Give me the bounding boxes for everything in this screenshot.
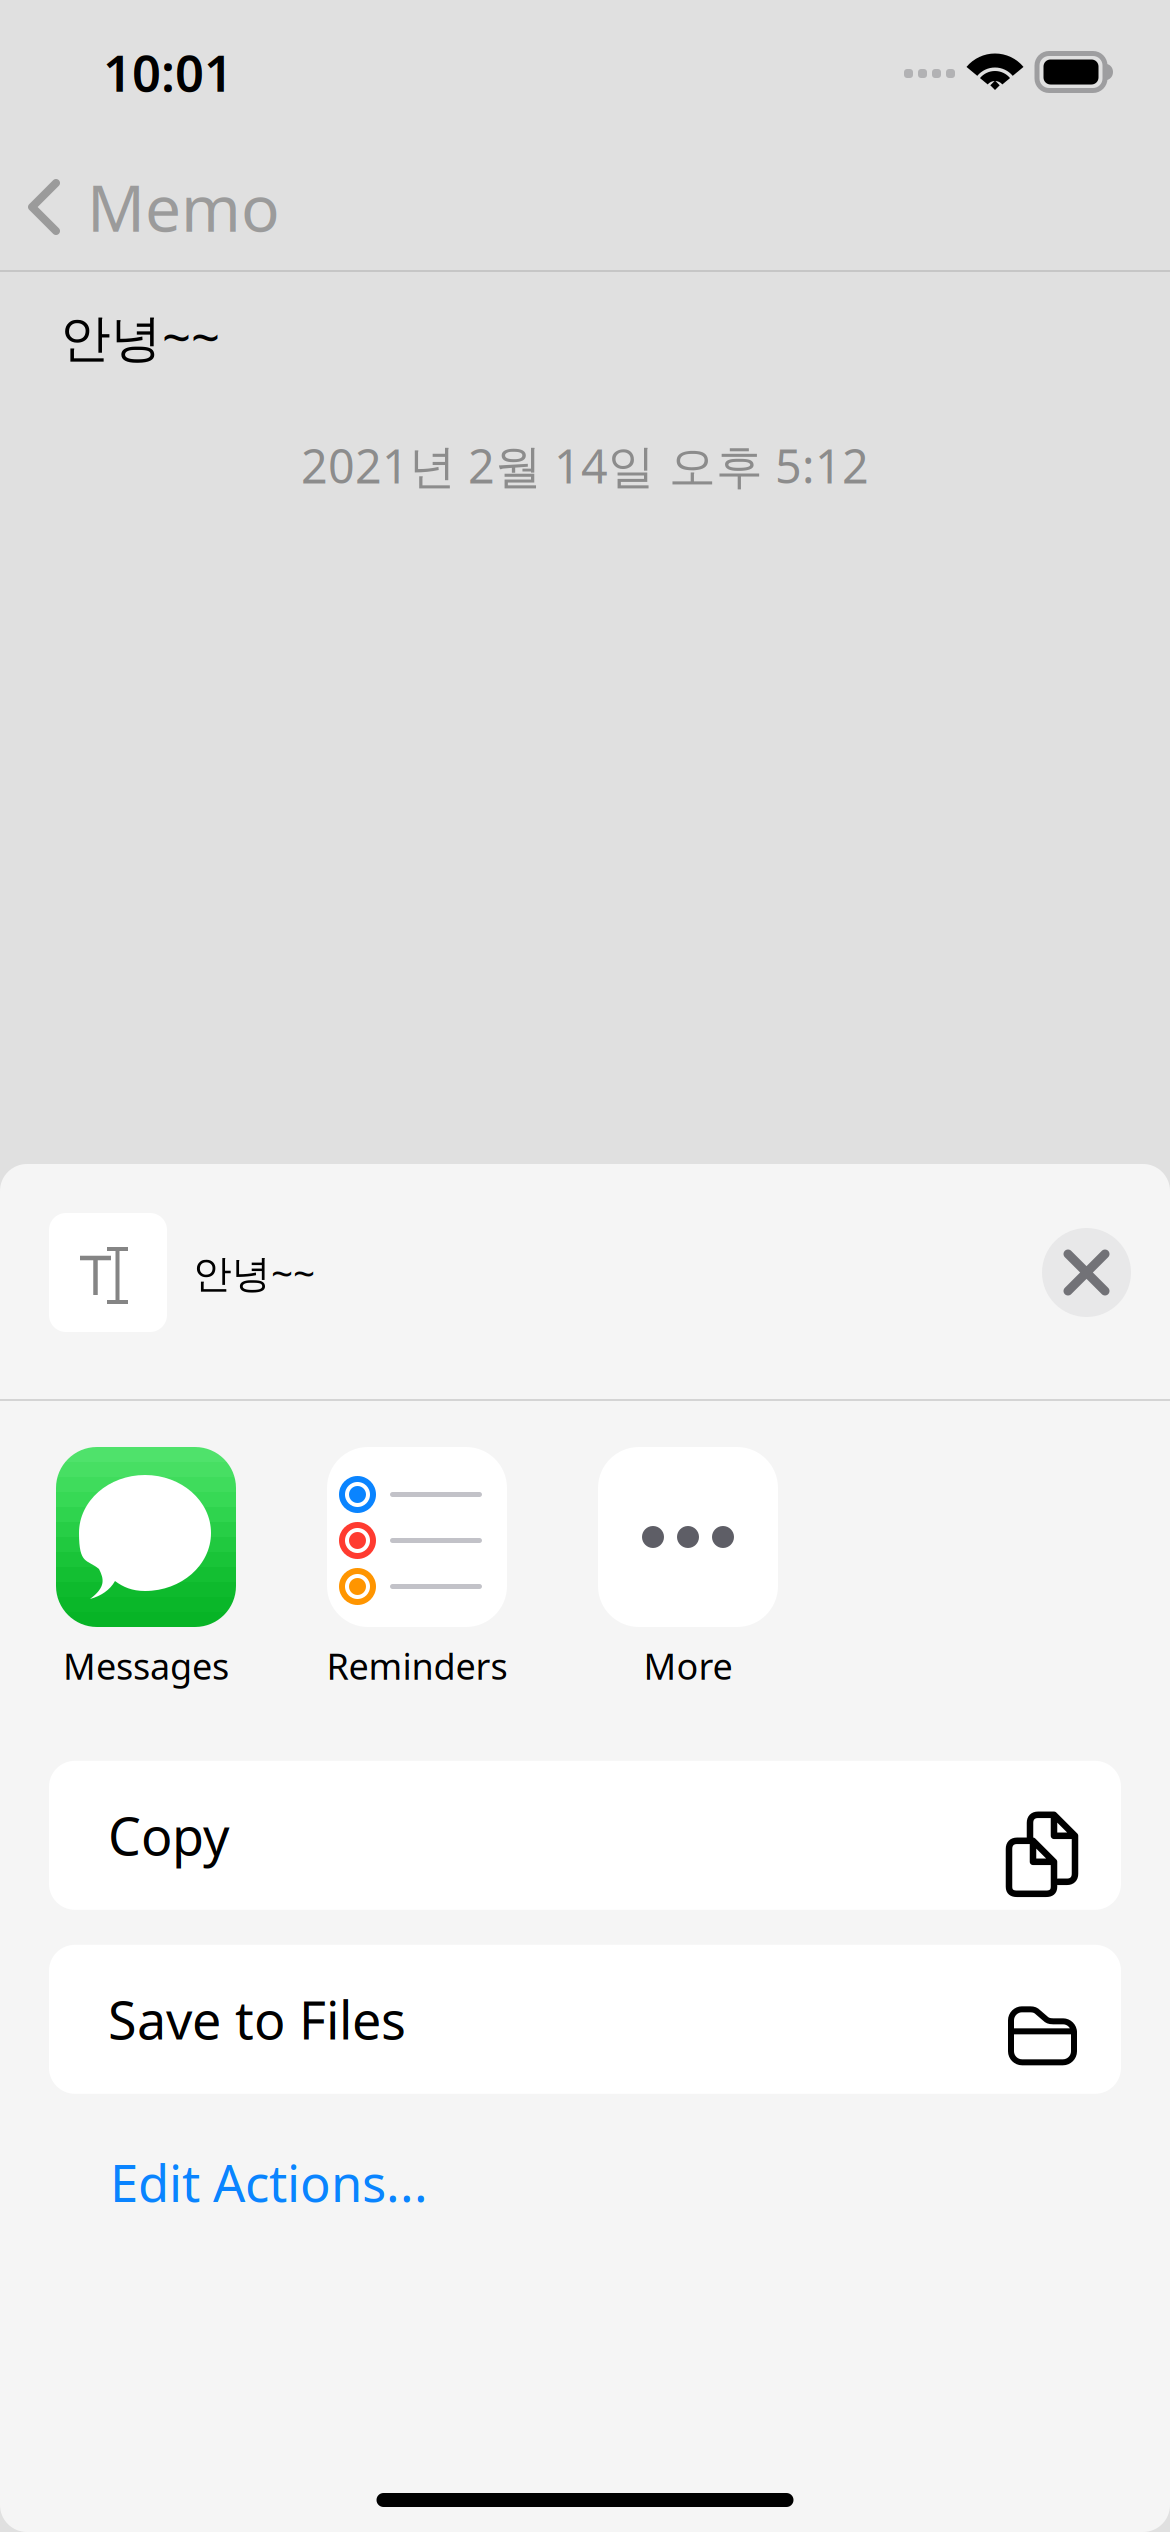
staticText: 안녕~~ bbox=[60, 303, 220, 370]
staticText: Copy bbox=[108, 1801, 230, 1870]
button[interactable]: Edit Actions... bbox=[110, 2141, 428, 2224]
staticText: 10:01 bbox=[103, 38, 233, 106]
staticText: Memo bbox=[87, 164, 280, 249]
button[interactable]: Back to Memo bbox=[0, 150, 300, 263]
button[interactable]: Close bbox=[1042, 1228, 1131, 1317]
button[interactable]: Reminders bbox=[327, 1447, 507, 1690]
button[interactable]: Save to Files bbox=[49, 1945, 1121, 2094]
staticText: More bbox=[643, 1642, 732, 1690]
staticText: 안녕~~ bbox=[193, 1247, 315, 1298]
button[interactable]: Messages bbox=[56, 1447, 236, 1690]
staticText: Reminders bbox=[326, 1642, 507, 1690]
button[interactable]: Copy bbox=[49, 1761, 1121, 1910]
button[interactable]: More bbox=[598, 1447, 778, 1690]
staticText: 2021년 2월 14일 오후 5:12 bbox=[301, 434, 869, 496]
staticText: Messages bbox=[63, 1642, 229, 1690]
staticText: Edit Actions... bbox=[110, 2149, 428, 2216]
staticText: Save to Files bbox=[108, 1985, 406, 2054]
